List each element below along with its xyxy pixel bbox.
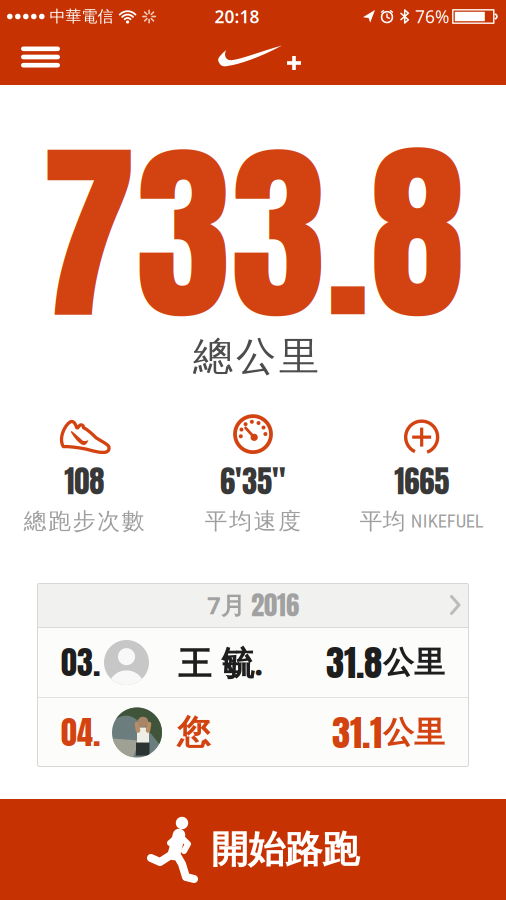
staticText: 108 bbox=[64, 458, 104, 504]
staticText: 6'35'' bbox=[220, 458, 286, 504]
staticText: 76% bbox=[415, 5, 449, 28]
button[interactable]: 7月 bbox=[37, 583, 469, 627]
staticText: 31.1 bbox=[332, 705, 382, 760]
button[interactable]: 04. bbox=[37, 698, 469, 767]
staticText: NIKEFUEL bbox=[411, 510, 484, 532]
staticText: 總公里 bbox=[193, 332, 319, 381]
staticText: 1665 bbox=[394, 458, 449, 504]
staticText: 20:18 bbox=[214, 5, 259, 28]
staticText: 31.8 bbox=[326, 635, 382, 690]
staticText: 7月 bbox=[207, 589, 245, 621]
staticText: 您 bbox=[177, 712, 210, 753]
staticText: 平均 bbox=[360, 507, 406, 535]
staticText: 公里 bbox=[383, 644, 445, 681]
staticText: 733.8 bbox=[41, 88, 465, 377]
staticText: 平均速度 bbox=[205, 507, 301, 535]
button[interactable]: Nike+ Home bbox=[220, 48, 286, 69]
staticText: 開始路跑 bbox=[211, 827, 359, 872]
staticText: 04. bbox=[61, 708, 100, 757]
button[interactable]: 開始路跑 bbox=[0, 799, 506, 900]
staticText: 王 毓. bbox=[178, 640, 263, 685]
staticText: 2016 bbox=[251, 585, 299, 625]
button[interactable]: 03. bbox=[37, 628, 469, 697]
staticText: 03. bbox=[61, 638, 100, 687]
button[interactable]: Menu bbox=[0, 48, 60, 69]
staticText: 總跑步次數 bbox=[24, 507, 145, 535]
staticText: 中華電信 bbox=[50, 7, 114, 26]
staticText: 公里 bbox=[383, 714, 445, 751]
